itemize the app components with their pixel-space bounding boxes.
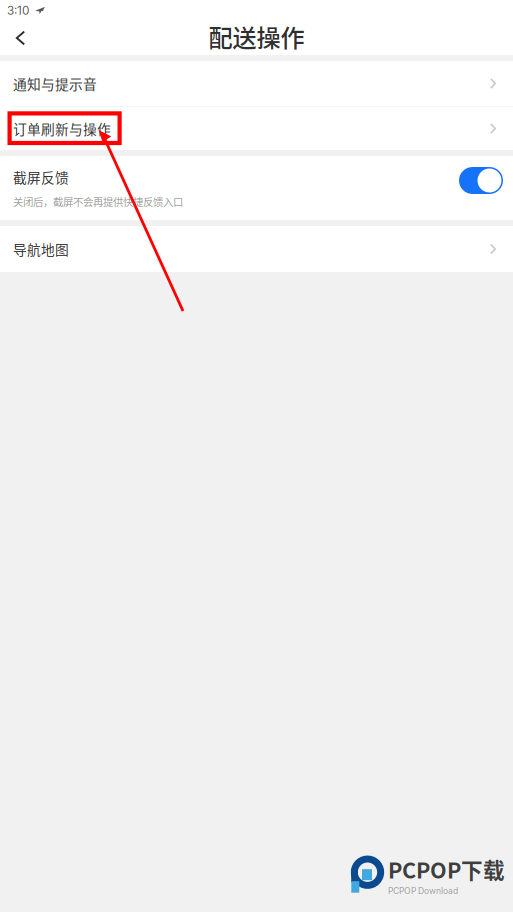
- staticText: 关闭后，截屏不会再提供快捷反馈入口: [13, 194, 183, 209]
- staticText: 配送操作: [208, 19, 304, 54]
- button[interactable]: 导航地图: [0, 226, 513, 272]
- button[interactable]: 通知与提示音: [0, 61, 513, 106]
- staticText: PCPOP下载: [388, 853, 505, 885]
- staticText: 订单刷新与操作: [13, 119, 111, 138]
- staticText: 通知与提示音: [13, 74, 97, 93]
- staticText: 截屏反馈: [13, 167, 69, 187]
- staticText: 导航地图: [13, 239, 69, 259]
- staticText: 3:10: [7, 3, 29, 18]
- button[interactable]: 截屏反馈: [0, 156, 513, 220]
- staticText: PCPOP Download: [388, 886, 458, 896]
- button[interactable]: Back: [0, 20, 41, 55]
- button[interactable]: 订单刷新与操作: [0, 107, 513, 150]
